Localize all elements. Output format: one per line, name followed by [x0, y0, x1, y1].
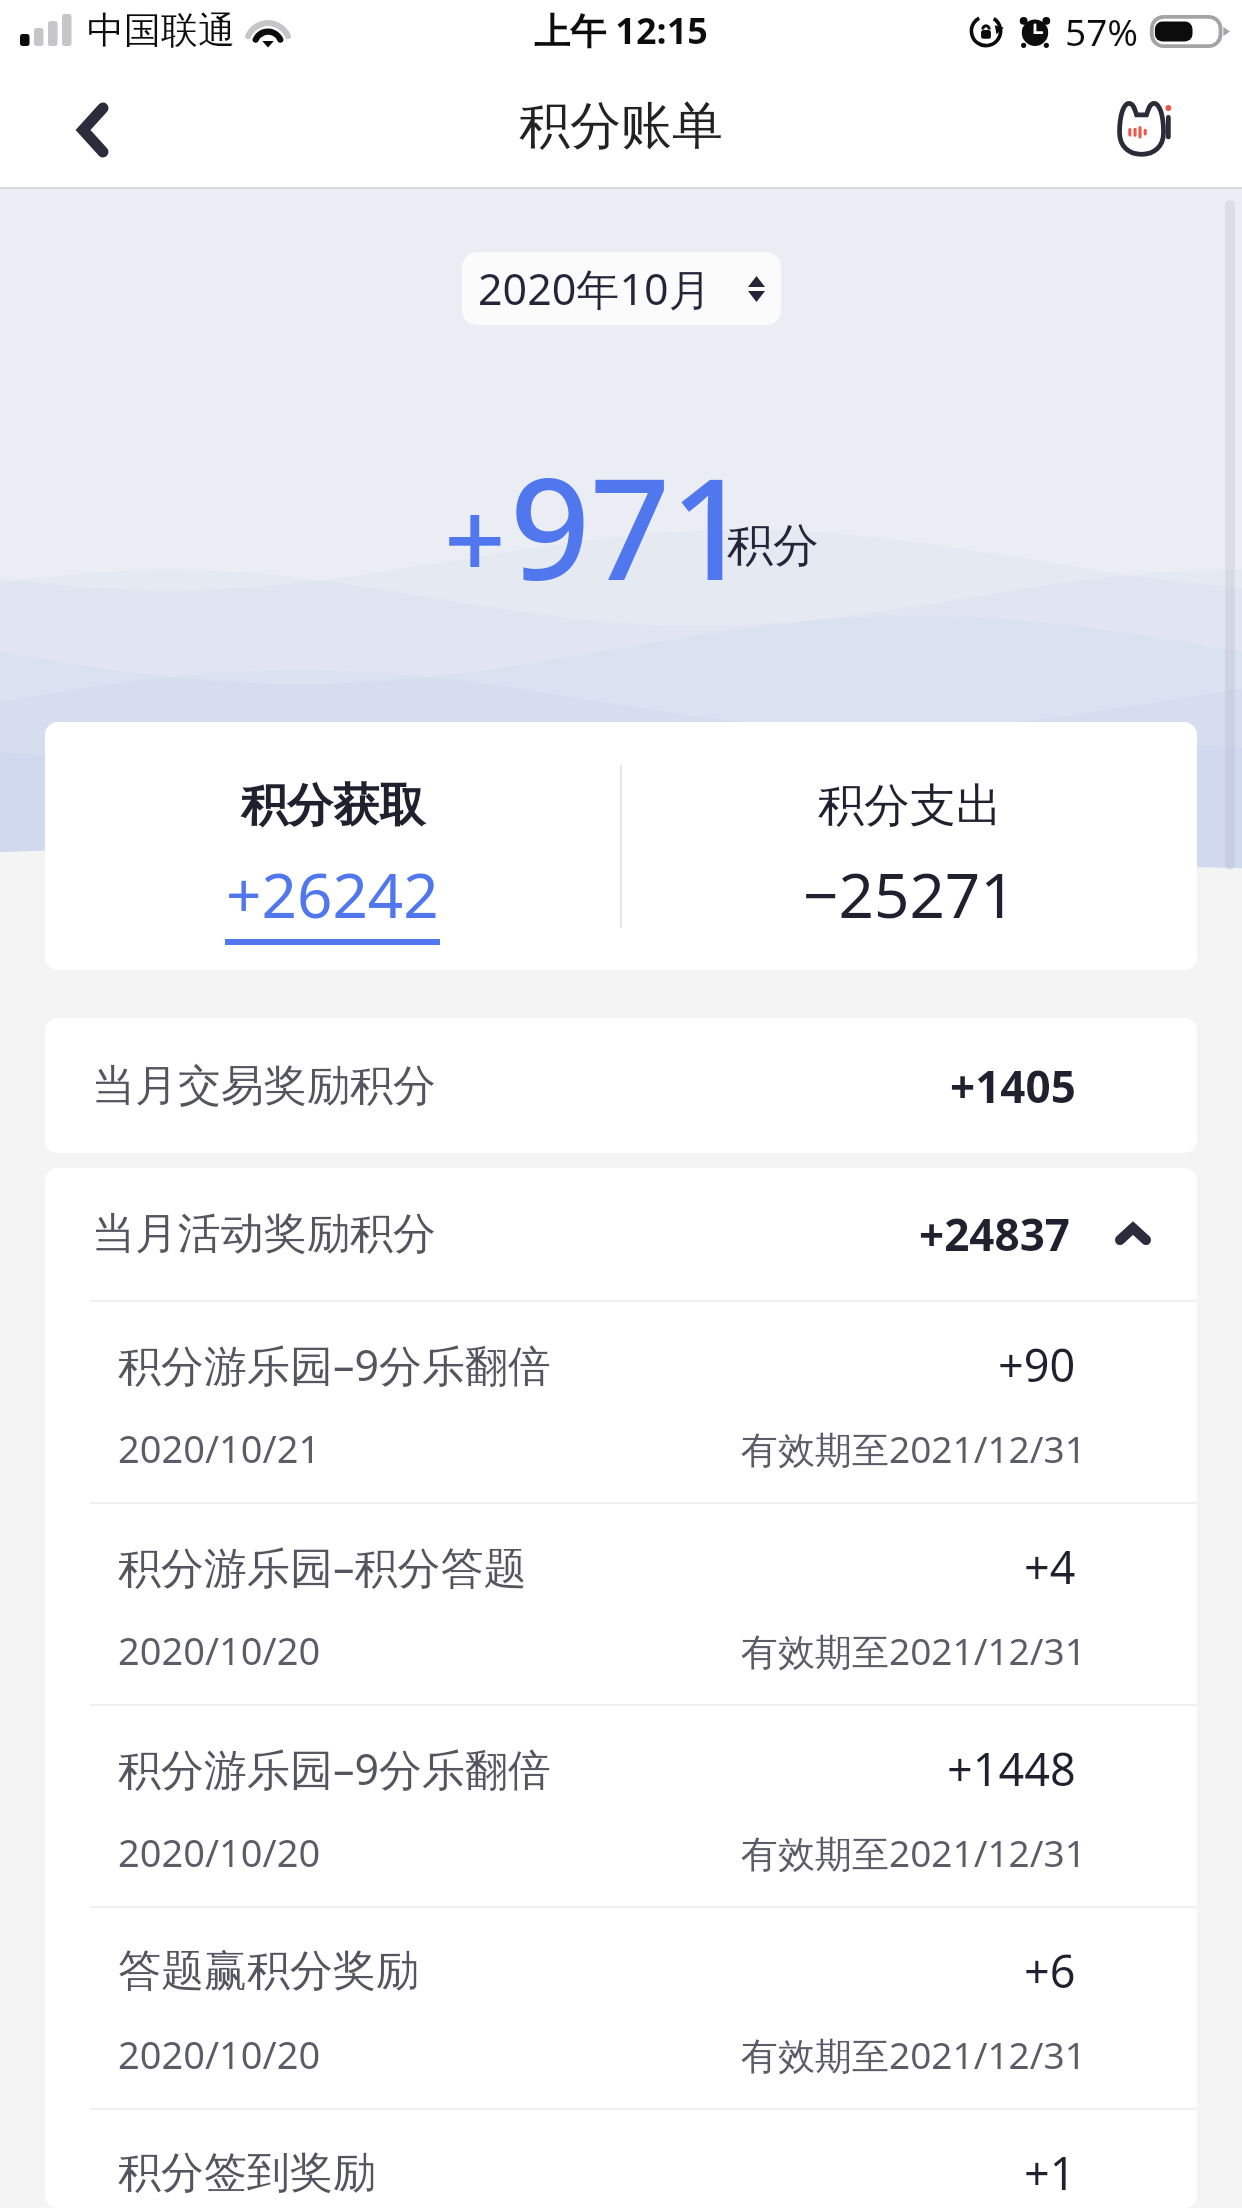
staticText: 积分账单 — [519, 94, 723, 158]
staticText: 当月交易奖励积分 — [92, 1059, 436, 1113]
staticText: 积分游乐园–9分乐翻倍 — [118, 1739, 552, 1798]
staticText: 有效期至2021/12/31 — [741, 1423, 1086, 1474]
staticText: 有效期至2021/12/31 — [741, 1625, 1086, 1676]
staticText: 积分游乐园–积分答题 — [118, 1537, 527, 1596]
button[interactable]: 积分游乐园–积分答题 — [45, 1504, 1197, 1704]
staticText: 积分游乐园–9分乐翻倍 — [118, 1335, 552, 1394]
staticText: +1405 — [950, 1056, 1076, 1116]
staticText: 中国联通 — [87, 7, 235, 54]
button[interactable]: Assistant — [1112, 70, 1242, 189]
staticText: 57% — [1065, 6, 1139, 56]
button[interactable]: 积分支出 — [622, 722, 1197, 970]
staticText: + — [444, 464, 506, 611]
staticText: +6 — [1024, 1940, 1076, 2001]
staticText: +1448 — [947, 1738, 1076, 1799]
staticText: 有效期至2021/12/31 — [741, 2029, 1086, 2080]
staticText: 积分支出 — [818, 777, 1002, 835]
staticText: −25271 — [803, 852, 1016, 936]
button[interactable]: 积分获取 — [45, 722, 620, 970]
staticText: 当月活动奖励积分 — [92, 1207, 436, 1261]
staticText: 2020/10/20 — [118, 1826, 321, 1878]
staticText: +26242 — [226, 852, 439, 936]
button[interactable]: 答题赢积分奖励 — [45, 1908, 1197, 2108]
staticText: 积分 — [727, 517, 819, 575]
button[interactable]: 2020年10月 — [462, 252, 781, 325]
button[interactable]: 当月活动奖励积分 — [45, 1168, 1197, 1300]
staticText: 有效期至2021/12/31 — [741, 1827, 1086, 1878]
staticText: 积分获取 — [241, 777, 425, 835]
staticText: 上午 12:15 — [534, 6, 708, 55]
staticText: 2020/10/21 — [118, 1422, 321, 1474]
staticText: +24837 — [919, 1204, 1071, 1264]
staticText: +4 — [1024, 1536, 1076, 1597]
button[interactable]: 积分签到奖励 — [45, 2110, 1197, 2208]
staticText: 971 — [510, 430, 751, 621]
button[interactable]: 积分游乐园–9分乐翻倍 — [45, 1302, 1197, 1502]
staticText: 2020年10月 — [478, 259, 712, 318]
button[interactable]: 当月交易奖励积分 — [45, 1018, 1197, 1153]
staticText: 积分签到奖励 — [118, 2146, 376, 2200]
staticText: 答题赢积分奖励 — [118, 1944, 419, 1998]
staticText: 2020/10/20 — [118, 1624, 321, 1676]
staticText: +90 — [998, 1334, 1076, 1395]
staticText: +1 — [1024, 2142, 1076, 2203]
staticText: 2020/10/20 — [118, 2028, 321, 2080]
button[interactable]: 积分游乐园–9分乐翻倍 — [45, 1706, 1197, 1906]
button[interactable]: Back — [0, 70, 140, 189]
